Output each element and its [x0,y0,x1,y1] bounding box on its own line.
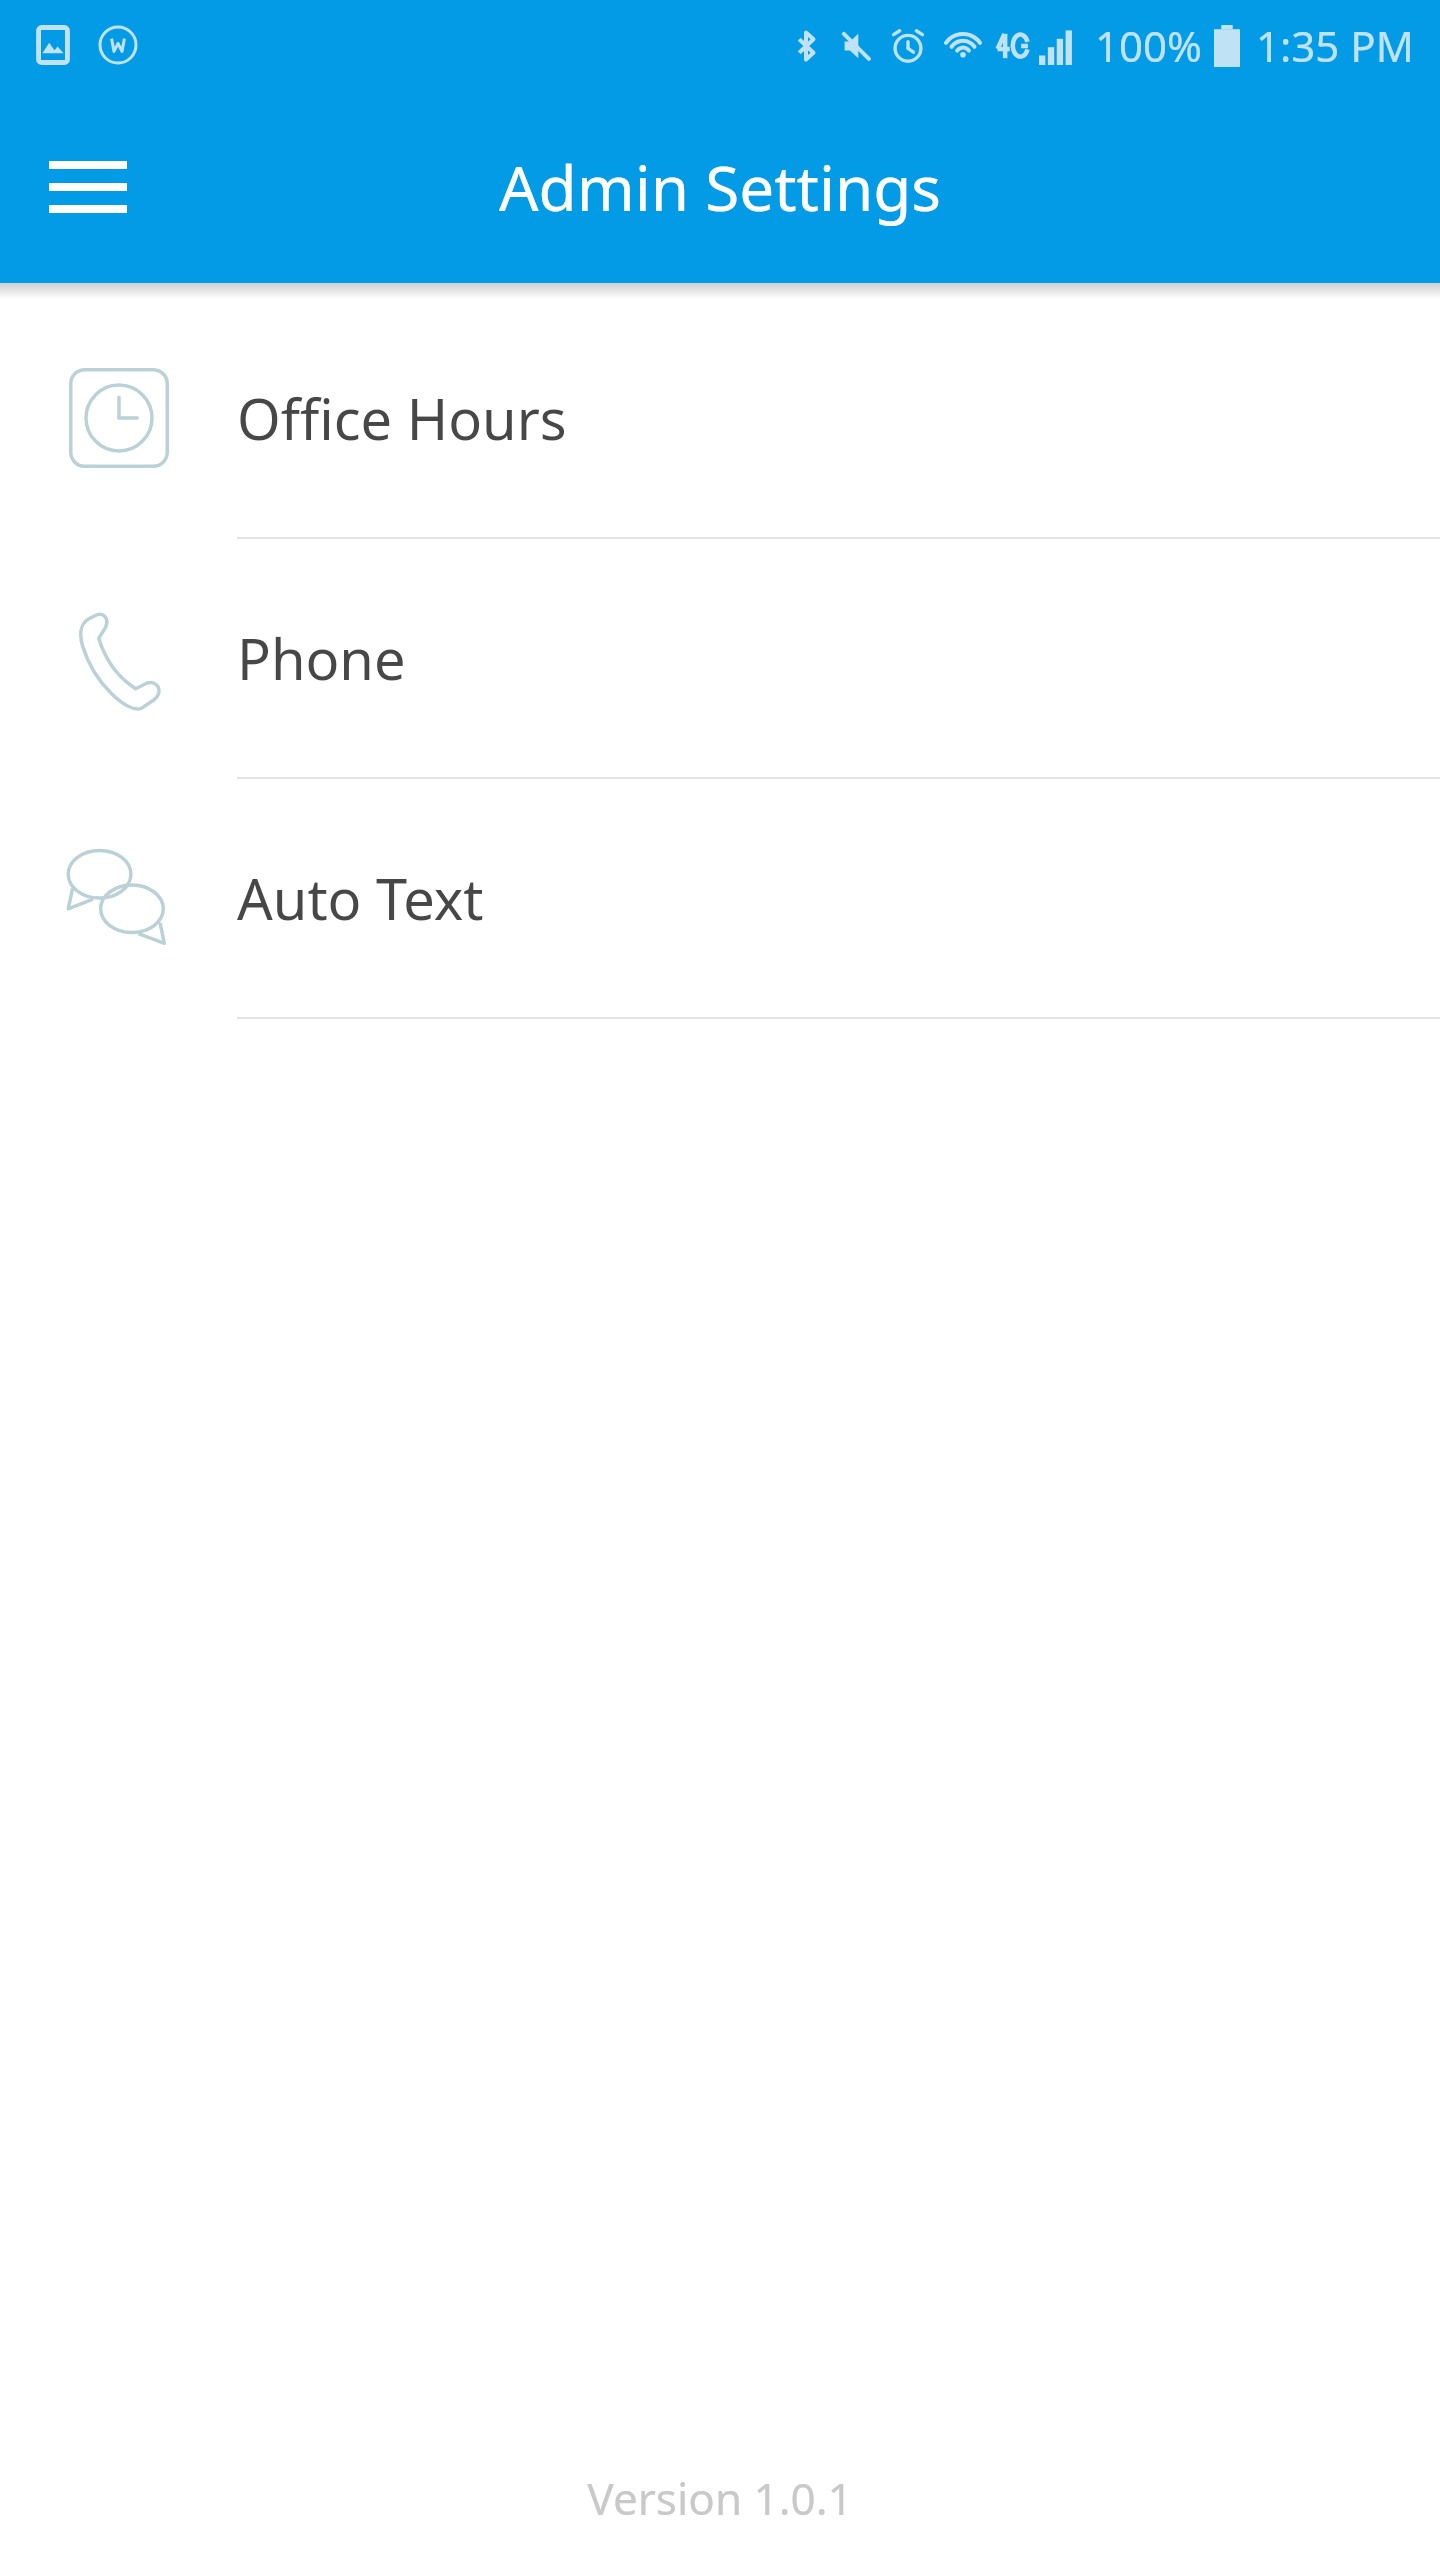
button[interactable]: Open navigation menu [30,129,146,245]
staticText: 1:35 PM [1256,17,1414,74]
staticText: Phone [237,620,406,696]
staticText: Auto Text [237,860,484,936]
staticText: Version 1.0.1 [0,2468,1440,2528]
button[interactable]: Office Hours [0,299,1440,539]
staticText: 100% [1095,17,1202,74]
button[interactable]: Phone [0,539,1440,779]
staticText: Admin Settings [499,145,942,229]
staticText: Office Hours [237,380,567,456]
button[interactable]: Auto Text [0,779,1440,1019]
